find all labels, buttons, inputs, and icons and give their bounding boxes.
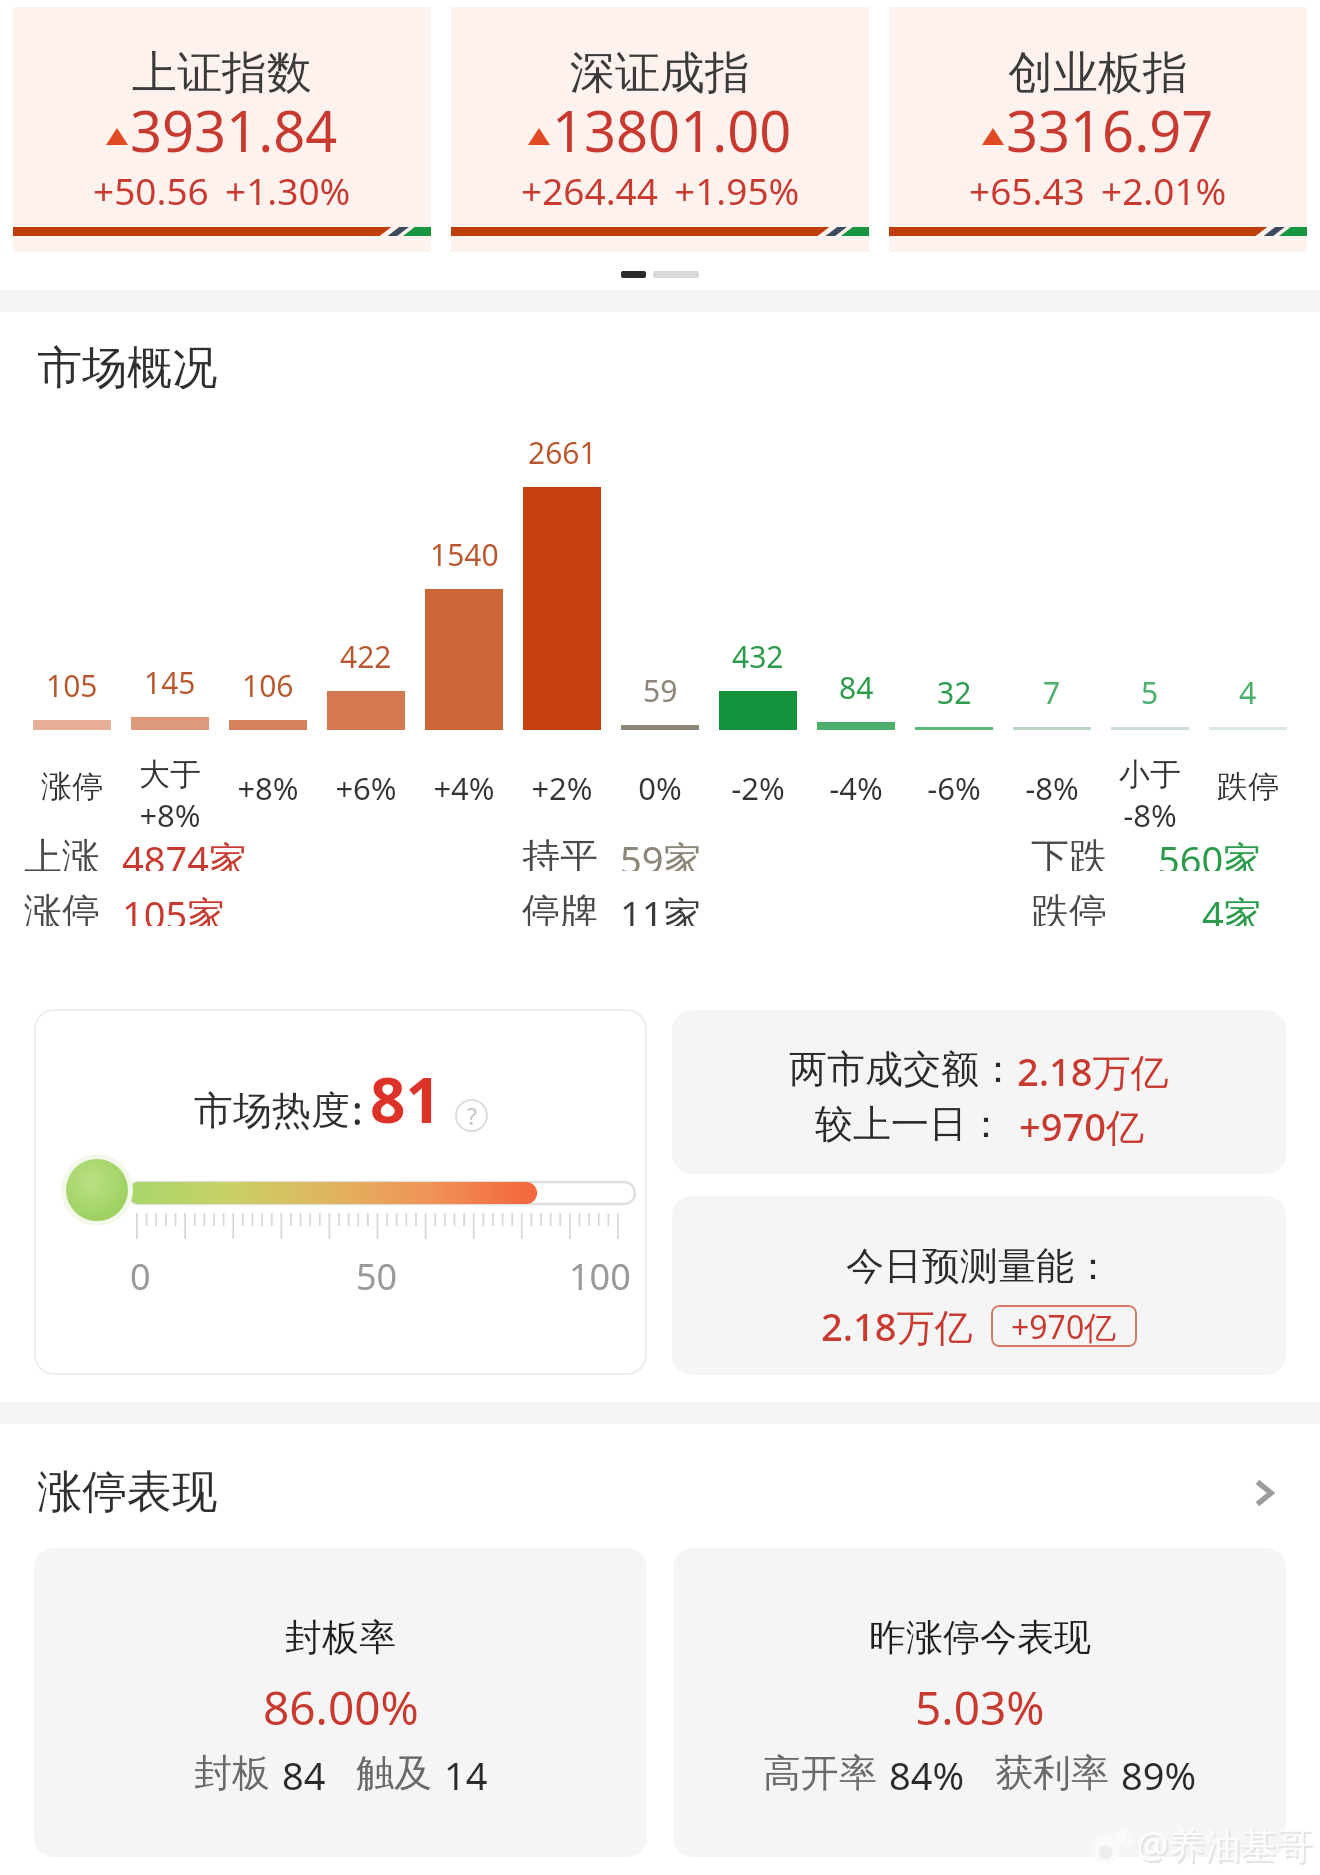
staticText: 涨停表现 [37, 1464, 217, 1521]
staticText: 14 [444, 1749, 488, 1801]
other: 查看更多 [1243, 1473, 1283, 1513]
staticText: 封板率 [285, 1614, 396, 1661]
button[interactable]: 深证成指 [451, 7, 869, 252]
staticText: 105家 [122, 888, 226, 926]
staticText: +970亿 [1011, 1305, 1117, 1347]
staticText: 两市成交额： [789, 1045, 1017, 1093]
staticText: 较上一日： [815, 1100, 1005, 1148]
staticText: 560家 [1158, 833, 1262, 871]
staticText: 小于 [1119, 755, 1181, 794]
staticText: 84 [839, 667, 874, 708]
staticText: 高开率 [763, 1749, 877, 1797]
staticText: @养油基哥 [1138, 1822, 1315, 1871]
staticText: 32 [937, 672, 972, 713]
staticText: 7 [1043, 672, 1061, 713]
staticText: +8% [139, 794, 201, 836]
staticText: 4 [1239, 672, 1257, 713]
staticText: +264.44 [521, 165, 658, 215]
staticText: 86.00% [263, 1676, 419, 1739]
staticText: 59家 [620, 833, 702, 871]
staticText: -8% [1025, 767, 1079, 809]
staticText: 3931.84 [130, 92, 338, 168]
staticText: 5 [1141, 672, 1159, 713]
staticText: 4874家 [122, 833, 247, 871]
staticText: 422 [340, 636, 392, 677]
staticText: 上涨 [24, 833, 100, 871]
staticText: 今日预测量能： [846, 1242, 1112, 1290]
staticText: 持平 [522, 833, 598, 871]
staticText: +4% [433, 767, 495, 809]
button[interactable]: 上证指数 [13, 7, 431, 252]
staticText: 84% [889, 1749, 965, 1801]
staticText: 105 [46, 665, 98, 706]
staticText: 81 [370, 1057, 441, 1141]
staticText: +50.56 [93, 165, 209, 215]
staticText: +970亿 [1019, 1100, 1144, 1152]
staticText: +6% [335, 767, 397, 809]
staticText: 3316.97 [1006, 92, 1214, 168]
staticText: -8% [1123, 794, 1177, 836]
button[interactable] [621, 271, 646, 278]
staticText: +2% [531, 767, 593, 809]
staticText: 5.03% [915, 1676, 1045, 1739]
staticText: 获利率 [995, 1749, 1109, 1797]
staticText: 50 [356, 1252, 398, 1301]
staticText: 106 [242, 665, 294, 706]
staticText: 触及 [356, 1749, 432, 1797]
staticText: -2% [731, 767, 785, 809]
staticText: 停牌 [522, 888, 598, 926]
staticText: 涨停 [24, 888, 100, 926]
staticText: 2.18万亿 [821, 1300, 973, 1352]
staticText: 创业板指 [1008, 45, 1188, 102]
staticText: 1540 [430, 534, 499, 575]
staticText: : [352, 1083, 363, 1136]
button[interactable]: 市场热度 [34, 1009, 647, 1375]
staticText: 封板 [194, 1749, 270, 1797]
staticText: 大于 [139, 755, 201, 794]
staticText: 2661 [528, 432, 597, 473]
staticText: 下跌 [1031, 833, 1107, 871]
staticText: 89% [1121, 1749, 1197, 1801]
staticText: @养油基哥 [1136, 1820, 1313, 1869]
staticText: 432 [732, 636, 784, 677]
staticText: 11家 [620, 888, 702, 926]
staticText: 深证成指 [570, 45, 750, 102]
staticText: 涨停 [41, 767, 103, 806]
staticText: 145 [144, 662, 196, 703]
button[interactable]: 创业板指 [889, 7, 1307, 252]
staticText: 上证指数 [132, 45, 312, 102]
button[interactable]: 今日预测量能： [672, 1196, 1286, 1375]
staticText: 4家 [1202, 888, 1262, 926]
button[interactable]: 昨涨停今表现 [673, 1548, 1286, 1857]
staticText: 0% [638, 767, 682, 809]
button[interactable]: 封板率 [34, 1548, 647, 1857]
staticText: 0 [130, 1252, 151, 1301]
staticText: -4% [829, 767, 883, 809]
staticText: 100 [569, 1252, 631, 1301]
staticText: ? [467, 1100, 477, 1131]
staticText: 昨涨停今表现 [869, 1614, 1091, 1661]
staticText: 2.18万亿 [1017, 1045, 1169, 1097]
staticText: +1.95% [674, 165, 800, 215]
staticText: 59 [643, 670, 678, 711]
button[interactable]: 涨停表现 [37, 1464, 1283, 1521]
staticText: +8% [237, 767, 299, 809]
staticText: 跌停 [1217, 767, 1279, 806]
staticText: 13801.00 [552, 92, 792, 168]
staticText: -6% [927, 767, 981, 809]
staticText: +1.30% [225, 165, 351, 215]
staticText: 跌停 [1031, 888, 1107, 926]
button[interactable]: 两市成交额： [672, 1010, 1286, 1174]
staticText: 84 [282, 1749, 326, 1801]
staticText: 市场概况 [37, 340, 217, 397]
staticText: 市场热度 [194, 1086, 350, 1135]
staticText: +65.43 [969, 165, 1085, 215]
staticText: +2.01% [1101, 165, 1227, 215]
